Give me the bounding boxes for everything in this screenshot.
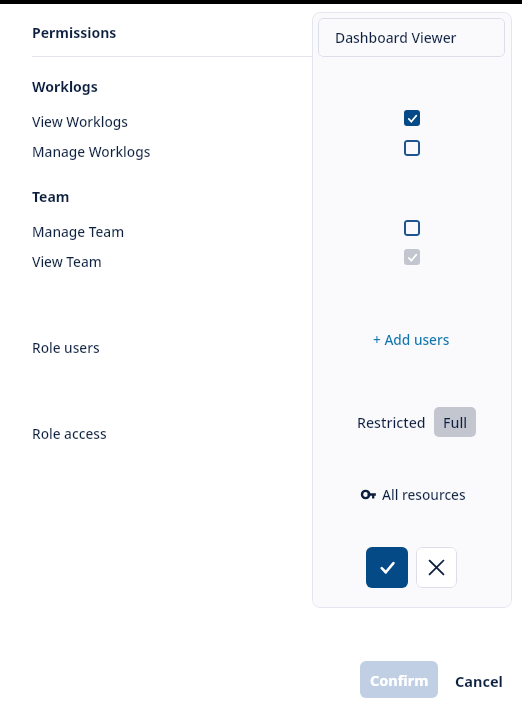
button[interactable]: Worklogs bbox=[32, 77, 98, 96]
staticText: Confirm bbox=[370, 670, 429, 690]
staticText: Role users bbox=[32, 338, 100, 357]
button[interactable]: Role users bbox=[32, 338, 100, 357]
staticText: All resources bbox=[382, 485, 466, 504]
staticText: Manage Team bbox=[32, 222, 125, 241]
staticText: + Add users bbox=[373, 330, 450, 349]
staticText: Team bbox=[32, 187, 70, 206]
button[interactable]: View Team bbox=[32, 252, 102, 271]
button[interactable]: Permissions bbox=[32, 23, 117, 42]
button[interactable]: Full bbox=[434, 407, 476, 437]
staticText: View Team bbox=[32, 252, 102, 271]
button[interactable]: + Add users bbox=[373, 330, 450, 349]
staticText: Full bbox=[443, 413, 468, 432]
staticText: Cancel bbox=[455, 671, 503, 691]
button[interactable]: All resources bbox=[362, 485, 466, 504]
button[interactable]: View Worklogs bbox=[32, 112, 128, 131]
button[interactable] bbox=[404, 220, 420, 236]
button[interactable]: Discard bbox=[416, 547, 457, 588]
button[interactable] bbox=[404, 249, 420, 265]
button[interactable]: Save bbox=[366, 547, 408, 588]
button[interactable] bbox=[404, 110, 420, 126]
staticText: Role access bbox=[32, 424, 107, 443]
button[interactable]: Role access bbox=[32, 424, 107, 443]
button[interactable] bbox=[404, 140, 420, 156]
button[interactable]: Cancel bbox=[455, 671, 503, 691]
staticText: View Worklogs bbox=[32, 112, 128, 131]
button[interactable]: Manage Worklogs bbox=[32, 142, 151, 161]
staticText: Worklogs bbox=[32, 77, 98, 96]
button[interactable]: Dashboard Viewer bbox=[318, 18, 505, 57]
button[interactable]: Restricted bbox=[357, 413, 426, 432]
staticText: Permissions bbox=[32, 23, 117, 42]
staticText: Dashboard Viewer bbox=[335, 28, 457, 47]
staticText: Manage Worklogs bbox=[32, 142, 151, 161]
button[interactable]: Confirm bbox=[360, 661, 438, 698]
staticText: Restricted bbox=[357, 413, 426, 432]
button[interactable]: Team bbox=[32, 187, 70, 206]
button[interactable]: Manage Team bbox=[32, 222, 125, 241]
